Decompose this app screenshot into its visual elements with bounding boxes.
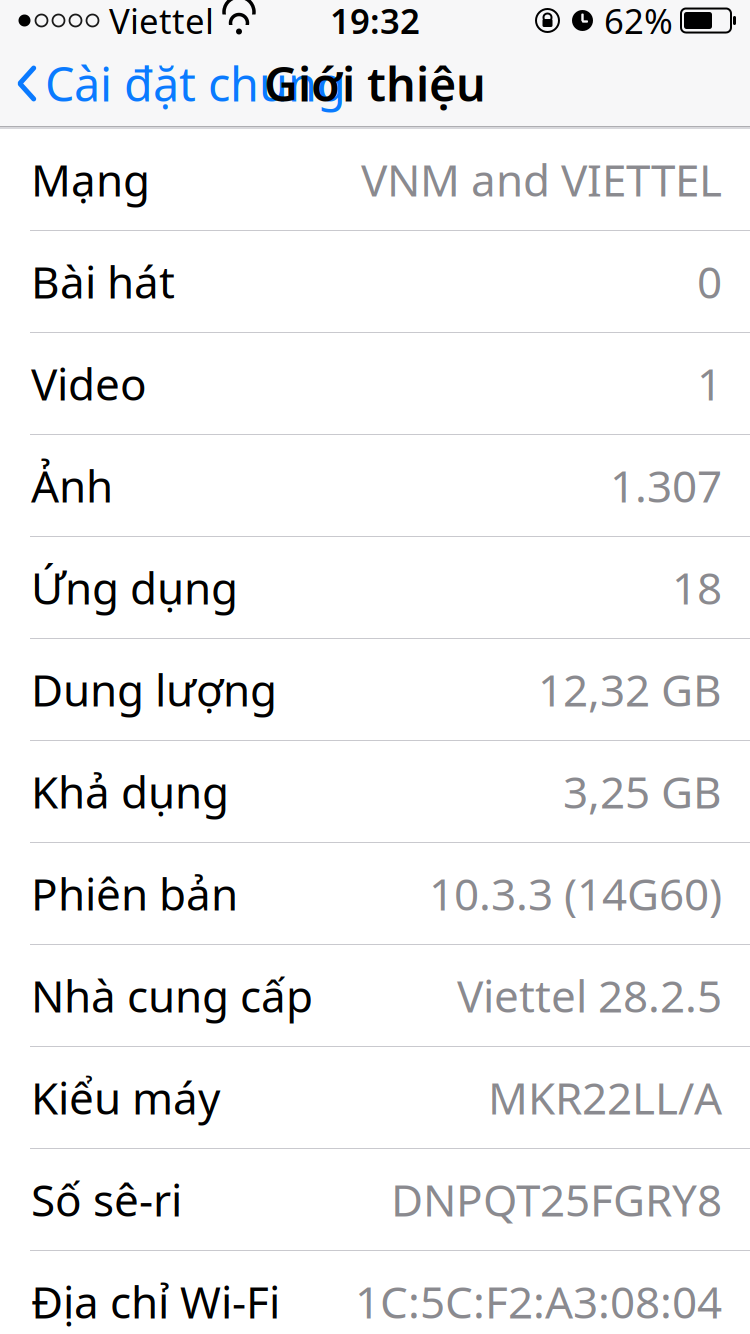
staticText: Nhà cung cấp: [31, 966, 313, 1025]
staticText: Viettel: [109, 0, 214, 43]
staticText: Video: [31, 354, 147, 413]
staticText: 12,32 GB: [538, 660, 722, 719]
staticText: Giới thiệu: [264, 52, 486, 114]
staticText: Ứng dụng: [31, 558, 238, 617]
staticText: 10.3.3 (14G60): [429, 864, 722, 923]
staticText: Số sê-ri: [31, 1170, 182, 1229]
staticText: Kiểu máy: [31, 1068, 220, 1127]
staticText: Mạng: [31, 150, 150, 209]
staticText: 3,25 GB: [563, 762, 722, 821]
button[interactable]: Cài đặt chung: [0, 41, 358, 126]
staticText: Viettel 28.2.5: [457, 966, 722, 1025]
staticText: Phiên bản: [31, 864, 238, 923]
staticText: Dung lượng: [31, 660, 277, 719]
staticText: Địa chỉ Wi-Fi: [31, 1272, 280, 1331]
staticText: 1.307: [610, 456, 722, 515]
staticText: Khả dụng: [31, 762, 229, 821]
staticText: DNPQT25FGRY8: [391, 1170, 722, 1229]
staticText: Bài hát: [31, 252, 175, 311]
staticText: 18: [672, 558, 722, 617]
staticText: VNM and VIETTEL: [361, 150, 722, 209]
staticText: 19:32: [330, 0, 420, 43]
staticText: Ảnh: [31, 456, 113, 515]
staticText: 1C:5C:F2:A3:08:04: [355, 1272, 722, 1331]
staticText: MKR22LL/A: [488, 1068, 722, 1127]
staticText: 62%: [604, 0, 673, 43]
staticText: 1: [697, 354, 722, 413]
staticText: 0: [697, 252, 722, 311]
staticText: Cài đặt chung: [45, 52, 346, 114]
